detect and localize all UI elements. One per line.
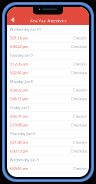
button[interactable]: Tuesday Jun 9 [7, 51, 89, 60]
staticText: 8:58:02 am [9, 87, 28, 93]
staticText: Checkin [72, 166, 86, 171]
staticText: 8:49:55 am [9, 166, 28, 171]
staticText: Checkin [72, 113, 86, 119]
staticText: Monday Jun 8 [9, 79, 32, 84]
staticText: 9:21:40 am [9, 140, 28, 145]
staticText: Checkin [72, 140, 86, 145]
button[interactable]: 6:04:22 pm [7, 42, 89, 51]
staticText: 6:10:08 pm [9, 122, 28, 127]
button[interactable]: Wednesday Jun 3 [7, 155, 89, 164]
staticText: Thursday Jun 4 [9, 131, 34, 136]
button[interactable]: 8:49:55 am [7, 164, 89, 173]
button[interactable]: Friday Jun 5 [7, 103, 89, 112]
staticText: 9:12:05 am [9, 61, 28, 67]
staticText: Checkout [70, 148, 86, 154]
button[interactable]: 9:12:05 am [7, 60, 89, 68]
button[interactable]: 9:05:31 am [7, 112, 89, 121]
button[interactable]: 6:02:41 pm [7, 68, 89, 77]
button[interactable]: 6:10:08 pm [7, 121, 89, 129]
button[interactable]: Thursday Jun 4 [7, 129, 89, 138]
button[interactable]: 5:46:11 pm [7, 95, 89, 103]
staticText: Tuesday Jun 9 [9, 53, 32, 58]
staticText: Checkin [72, 87, 86, 93]
staticText: Friday Jun 5 [9, 105, 29, 110]
staticText: 6:04:22 pm [9, 44, 28, 49]
staticText: Checkout [70, 122, 86, 127]
staticText: Checkin [72, 61, 86, 67]
staticText: Checkout [70, 96, 86, 101]
staticText: View Your Attendance [29, 18, 66, 23]
staticText: Wednesday Jun 10 [9, 26, 40, 32]
button[interactable]: 6:00:19 pm [7, 147, 89, 155]
staticText: Checkout [70, 44, 86, 49]
button[interactable]: 8:58:02 am [7, 86, 89, 95]
staticText: 9:01:14 am [9, 35, 28, 40]
staticText: 5:46:11 pm [9, 96, 28, 101]
button[interactable]: 9:01:14 am [7, 34, 89, 42]
button[interactable]: Monday Jun 8 [7, 77, 89, 86]
staticText: 6:00:19 pm [9, 148, 28, 154]
staticText: 9:05:31 am [9, 113, 28, 119]
staticText: Checkout [70, 70, 86, 75]
button[interactable]: Back [7, 7, 19, 25]
staticText: 6:02:41 pm [9, 70, 28, 75]
staticText: Checkin [72, 35, 86, 40]
button[interactable]: Wednesday Jun 10 [7, 25, 89, 34]
button[interactable]: 9:21:40 am [7, 138, 89, 147]
staticText: Wednesday Jun 3 [9, 157, 38, 162]
